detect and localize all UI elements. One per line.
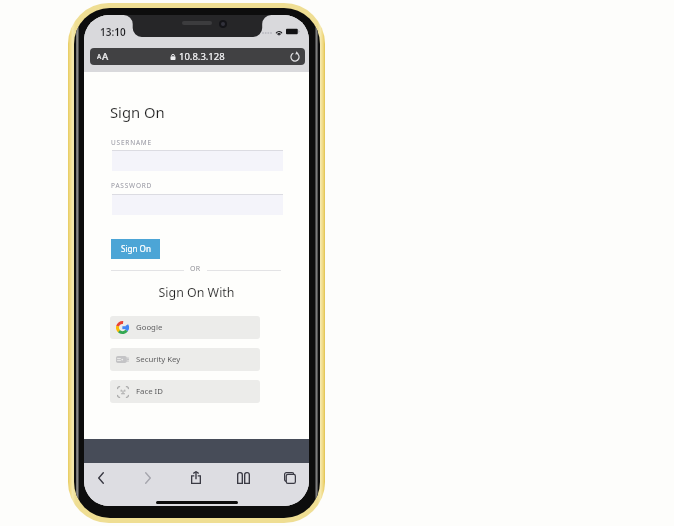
button[interactable]: Bookmarks bbox=[227, 465, 259, 490]
staticText: OR bbox=[190, 264, 201, 274]
staticText: A bbox=[102, 50, 109, 63]
staticText: USERNAME bbox=[111, 138, 152, 147]
staticText: Sign On bbox=[110, 102, 165, 122]
button[interactable]: Tabs bbox=[274, 465, 306, 490]
staticText: 10.8.3.128 bbox=[179, 50, 225, 63]
button[interactable]: Share bbox=[180, 465, 212, 490]
button[interactable]: Security Key bbox=[110, 348, 260, 371]
staticText: Security Key bbox=[136, 354, 181, 365]
staticText: A bbox=[97, 52, 102, 61]
button[interactable]: Back bbox=[85, 465, 117, 490]
button[interactable]: Google bbox=[110, 316, 260, 339]
staticText: Face ID bbox=[136, 386, 163, 397]
staticText: Google bbox=[136, 322, 163, 333]
staticText: Sign On bbox=[121, 243, 151, 254]
button[interactable]: Forward bbox=[132, 465, 164, 490]
button[interactable]: Face ID bbox=[110, 380, 260, 403]
staticText: Sign On With bbox=[84, 284, 309, 301]
button[interactable]: A bbox=[90, 48, 305, 65]
staticText: 13:10 bbox=[100, 25, 126, 39]
staticText: PASSWORD bbox=[111, 181, 153, 190]
button[interactable]: Sign On bbox=[111, 239, 160, 259]
